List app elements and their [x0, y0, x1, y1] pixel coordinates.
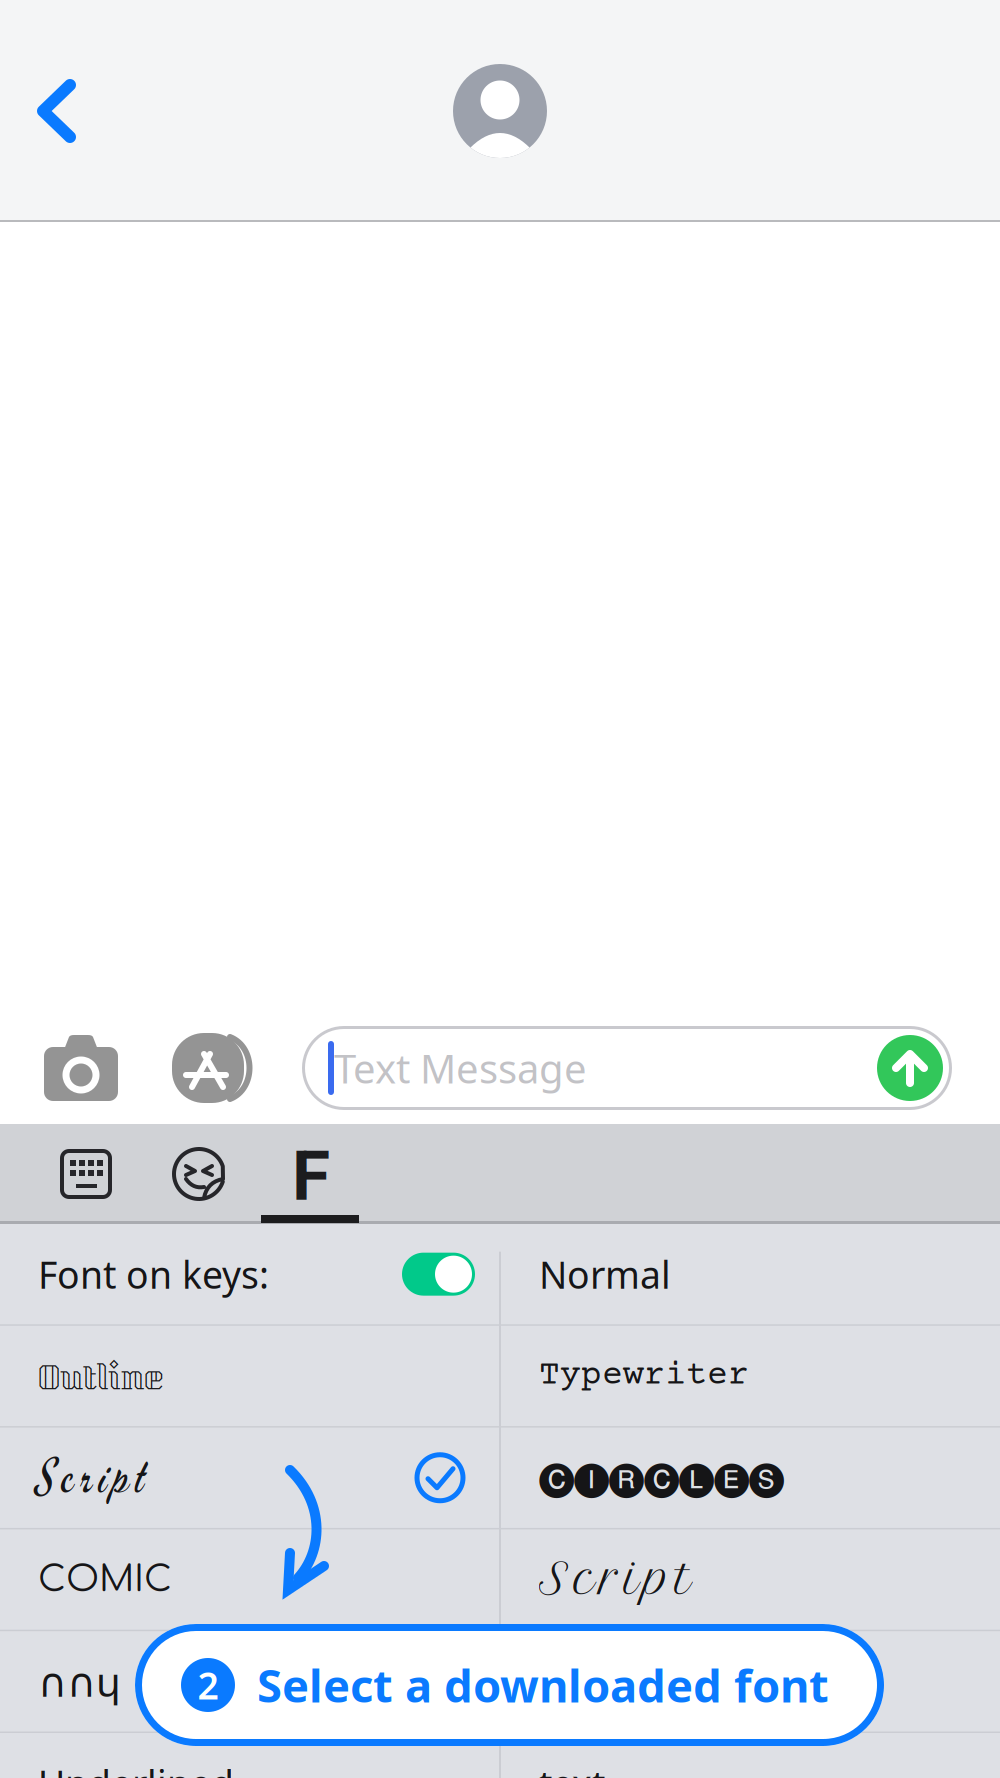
button[interactable]: Script	[0, 1428, 499, 1528]
button[interactable]: Send	[877, 1035, 943, 1101]
button[interactable]: Stickers	[158, 1124, 240, 1224]
staticText: Select a downloaded font	[257, 1655, 829, 1715]
staticText: Text Message	[334, 1041, 587, 1094]
staticText: ∩∩ɥ	[38, 1655, 121, 1708]
staticText: ʇxǝʇ	[539, 1657, 606, 1706]
button[interactable]: Apps	[172, 1012, 302, 1124]
button[interactable]: 2	[135, 1624, 884, 1746]
staticText: 2	[197, 1660, 218, 1710]
button[interactable]: Outline	[0, 1326, 499, 1426]
staticText: Script	[539, 1552, 692, 1605]
button[interactable]: 🅒🅘🅡🅒🅛🅔🅢	[501, 1428, 1000, 1528]
button[interactable]: ʇxǝʇ	[501, 1631, 1000, 1731]
button[interactable]: t̶e̶x̶t̶	[501, 1733, 1000, 1778]
button[interactable]: U̲n̲d̲e̲r̲l̲i̲n̲e̲d̲	[0, 1733, 499, 1778]
staticText: Font on keys:	[38, 1249, 269, 1299]
button[interactable]: Typewriter	[501, 1326, 1000, 1426]
staticText: Script	[38, 1447, 145, 1507]
staticText: 🅒🅘🅡🅒🅛🅔🅢	[539, 1461, 784, 1495]
staticText: t̶e̶x̶t̶	[539, 1758, 605, 1778]
button[interactable]: Contact profile	[453, 64, 547, 158]
button[interactable]: COMIC	[0, 1529, 499, 1630]
staticText: Outline	[38, 1356, 163, 1408]
button[interactable]: Fonts	[262, 1124, 360, 1224]
staticText: F	[292, 1135, 330, 1217]
button[interactable]: Normal	[501, 1224, 1000, 1324]
button[interactable]: Camera	[0, 1012, 172, 1124]
button[interactable]: Back	[16, 56, 112, 166]
staticText: Normal	[539, 1249, 671, 1299]
button[interactable]: Font on keys:	[0, 1224, 499, 1324]
button[interactable]: Script	[501, 1529, 1000, 1630]
button[interactable]: ∩∩ɥ	[0, 1631, 499, 1731]
staticText: COMIC	[38, 1559, 172, 1600]
button[interactable]: Keyboard	[48, 1124, 124, 1224]
staticText: U̲n̲d̲e̲r̲l̲i̲n̲e̲d̲	[38, 1758, 234, 1778]
staticText: Typewriter	[539, 1356, 749, 1395]
